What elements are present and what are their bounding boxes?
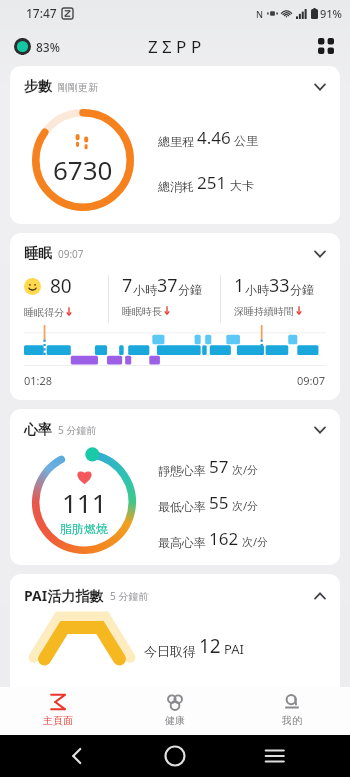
staticText: 主頁面 bbox=[43, 714, 73, 727]
staticText: 脂肪燃燒 bbox=[60, 521, 108, 536]
staticText: 01:28 bbox=[24, 373, 53, 388]
button[interactable]: 睡眠 bbox=[10, 233, 340, 263]
staticText: 深睡持續時間 bbox=[234, 305, 294, 318]
staticText: N bbox=[256, 8, 263, 20]
staticText: 最低心率 bbox=[158, 499, 206, 514]
staticText: 睡眠時長 bbox=[122, 305, 162, 318]
staticText: 80 bbox=[50, 273, 72, 299]
staticText: 37 bbox=[157, 273, 178, 298]
staticText: PAI bbox=[224, 640, 244, 658]
staticText: 公里 bbox=[234, 133, 258, 148]
staticText: 分鐘 bbox=[290, 282, 314, 297]
staticText: 睡眠得分 bbox=[24, 306, 64, 319]
staticText: 7 bbox=[122, 273, 133, 298]
other: Expand bbox=[312, 79, 328, 95]
staticText: Z bbox=[148, 35, 158, 58]
staticText: 心率 bbox=[24, 421, 52, 439]
staticText: 分鐘 bbox=[178, 282, 202, 297]
other: Expand bbox=[312, 246, 328, 262]
staticText: 111 bbox=[62, 485, 107, 520]
staticText: 55 bbox=[209, 491, 229, 514]
staticText: 33 bbox=[269, 273, 290, 298]
staticText: 步數 bbox=[24, 78, 52, 96]
button[interactable]: 我的 bbox=[233, 687, 350, 735]
staticText: P bbox=[191, 35, 202, 58]
staticText: 251 bbox=[197, 171, 227, 194]
staticText: 總里程 bbox=[158, 134, 194, 149]
staticText: 總消耗 bbox=[158, 179, 194, 194]
button[interactable]: PAI活力指數 bbox=[10, 574, 340, 605]
other: Expand bbox=[312, 422, 328, 438]
staticText: 83% bbox=[36, 39, 60, 55]
staticText: 162 bbox=[209, 527, 239, 550]
button[interactable]: 健康 bbox=[116, 687, 233, 735]
staticText: 17:47 bbox=[26, 5, 57, 21]
other: Expand bbox=[312, 588, 328, 604]
staticText: 大卡 bbox=[230, 178, 254, 193]
staticText: 1 bbox=[234, 273, 245, 298]
staticText: 91% bbox=[320, 6, 342, 21]
staticText: 57 bbox=[209, 455, 229, 478]
staticText: 5 分鐘前 bbox=[110, 589, 149, 603]
staticText: 6730 bbox=[53, 152, 113, 187]
staticText: 次/分 bbox=[232, 462, 259, 477]
staticText: 5 分鐘前 bbox=[58, 423, 97, 437]
staticText: 最高心率 bbox=[158, 535, 206, 550]
staticText: 次/分 bbox=[232, 498, 259, 513]
staticText: 4.46 bbox=[197, 126, 231, 149]
staticText: 睡眠 bbox=[24, 245, 52, 263]
button[interactable]: Devices bbox=[312, 32, 340, 60]
button[interactable]: 心率 bbox=[10, 409, 340, 439]
staticText: 靜態心率 bbox=[158, 463, 206, 478]
staticText: P bbox=[176, 35, 187, 58]
staticText: 小時 bbox=[245, 282, 269, 297]
staticText: 剛剛更新 bbox=[58, 81, 98, 94]
button[interactable]: 步數 bbox=[10, 66, 340, 96]
staticText: 我的 bbox=[282, 714, 302, 727]
staticText: Σ bbox=[162, 35, 172, 58]
staticText: 健康 bbox=[165, 714, 185, 727]
staticText: 今日取得 bbox=[144, 643, 196, 659]
button[interactable]: 83% bbox=[11, 35, 63, 58]
staticText: 12 bbox=[199, 633, 221, 659]
staticText: 次/分 bbox=[242, 534, 269, 549]
staticText: 09:07 bbox=[58, 247, 84, 261]
staticText: 09:07 bbox=[297, 373, 326, 388]
button[interactable]: 主頁面 bbox=[0, 687, 116, 735]
staticText: 小時 bbox=[133, 282, 157, 297]
staticText: PAI活力指數 bbox=[24, 586, 104, 605]
